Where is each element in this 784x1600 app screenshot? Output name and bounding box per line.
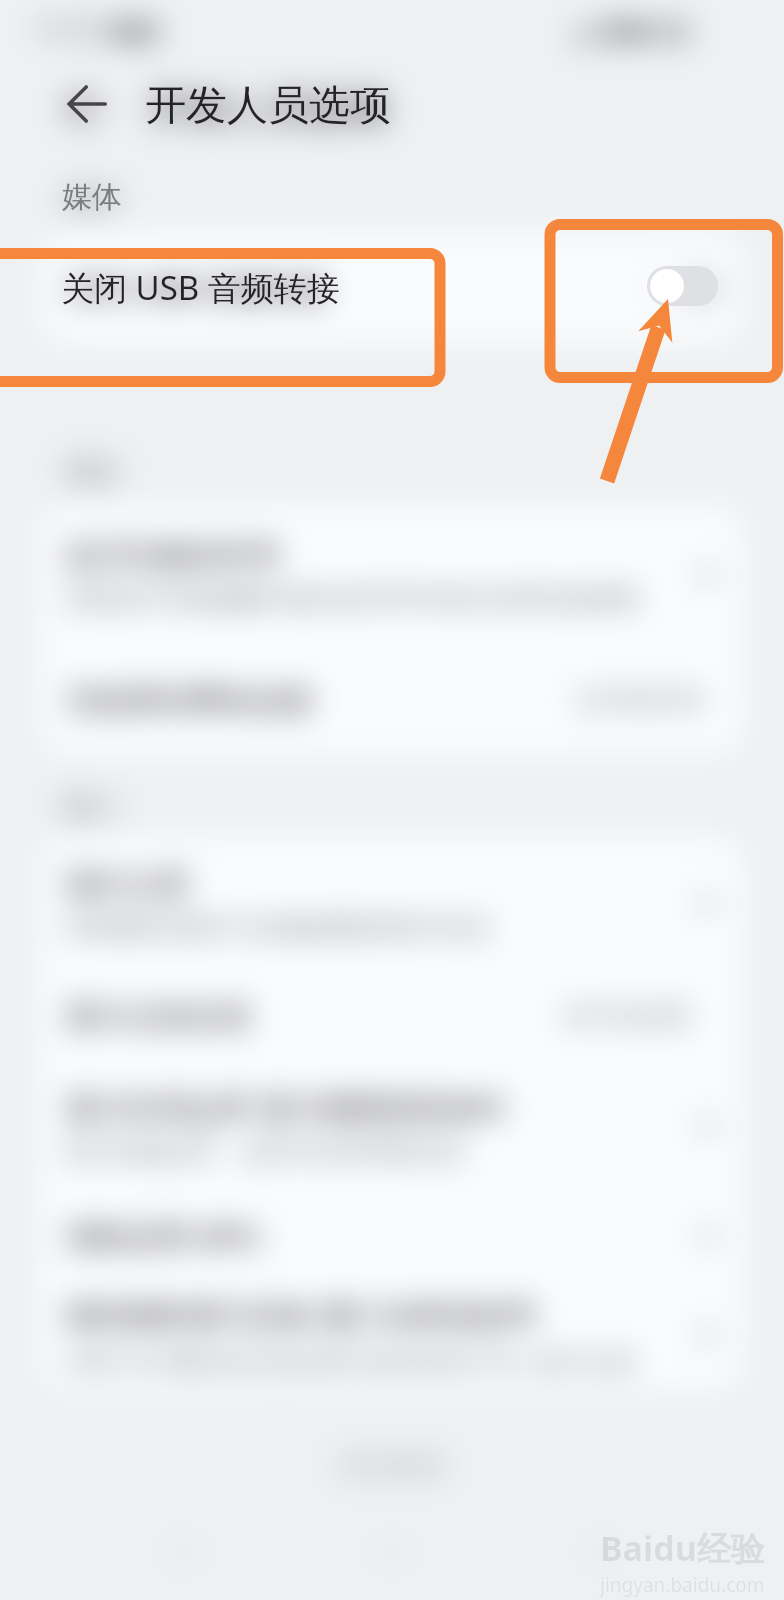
button[interactable]: 显示布局边界 显示视图更新操作 bbox=[40, 1060, 744, 1192]
staticText: 选择蓝牙音频编解码器的采样率等相关设置选项参数 bbox=[65, 583, 640, 614]
staticText: 调试 bbox=[64, 455, 120, 490]
staticText: 已停用关闭 bbox=[574, 684, 704, 717]
staticText: 屏幕叠加层显示当前触摸数据相关信息 bbox=[65, 912, 490, 943]
staticText: 开发人员选项 bbox=[148, 83, 388, 133]
button[interactable]: 指针位置 bbox=[40, 836, 744, 972]
staticText: 开发人员选项 bbox=[145, 80, 391, 132]
staticText: Baidu经验 bbox=[600, 1525, 765, 1571]
staticText: 显示剪裁边界、边距等内容界限信息 bbox=[65, 1136, 465, 1167]
staticText: 指针位置 bbox=[65, 865, 189, 904]
button[interactable]: 无线调试网络连接 bbox=[40, 645, 744, 755]
button[interactable]: Navigation bbox=[574, 1523, 632, 1581]
staticText: 显示布局边界 显示视图更新操作 bbox=[65, 1086, 508, 1128]
staticText: 15:06 ■■ bbox=[32, 10, 160, 47]
button[interactable]: 强制启用 GPU bbox=[40, 1192, 744, 1280]
staticText: 无线调试网络连接 bbox=[65, 681, 313, 720]
staticText: 关闭 USB 音频转接 bbox=[65, 267, 328, 309]
staticText: 输入 bbox=[64, 789, 120, 824]
button[interactable]: 模拟辅助显示设备 窗口动画缩放率 bbox=[40, 1280, 744, 1390]
staticText: 显示点按反馈 bbox=[65, 997, 251, 1036]
staticText: 媒体 bbox=[62, 178, 122, 216]
button[interactable]: 显示点按反馈 bbox=[40, 972, 744, 1060]
staticText: 停用 HW 叠加层渲染设置并始终使用 GPU 进行合成 bbox=[65, 1343, 635, 1377]
staticText: 关闭 USB 音频转接 bbox=[61, 265, 340, 310]
staticText: jingyan.baidu.com bbox=[600, 1572, 765, 1598]
button[interactable]: 蓝牙音频采样率 bbox=[40, 505, 744, 645]
staticText: 模拟辅助显示设备 窗口动画缩放率 bbox=[65, 1293, 539, 1335]
button[interactable]: 关闭 USB 音频转接 bbox=[40, 232, 744, 344]
button[interactable]: Toggle switch bbox=[647, 266, 718, 306]
staticText: 媒体 bbox=[64, 182, 120, 217]
staticText: 强制启用 GPU bbox=[65, 1215, 262, 1257]
button[interactable]: Toggle switch bbox=[653, 268, 724, 308]
staticText: 蓝牙音频采样率 bbox=[65, 536, 282, 575]
staticText: ▲ ■■ ▮▮ bbox=[574, 10, 690, 47]
button[interactable]: Back bbox=[68, 85, 106, 123]
